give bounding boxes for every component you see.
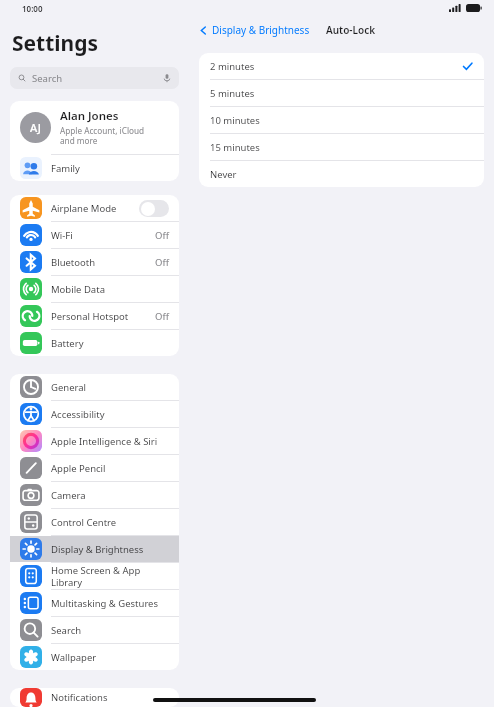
staticText: Alan Jones [60, 108, 119, 124]
button[interactable]: Apple Intelligence & Siri [10, 428, 179, 454]
staticText: Settings [12, 29, 99, 58]
staticText: Airplane Mode [51, 202, 139, 215]
staticText: 10:00 [22, 3, 43, 14]
staticText: Notifications [51, 691, 169, 704]
button[interactable]: Personal Hotspot [10, 303, 179, 329]
staticText: 15 minutes [210, 141, 473, 154]
staticText: Auto-Lock [326, 23, 376, 37]
staticText: Apple Account, iCloud and more [60, 125, 145, 147]
button[interactable]: Control Centre [10, 509, 179, 535]
staticText: AJ [30, 120, 41, 135]
button[interactable]: 10 minutes [199, 107, 484, 133]
button[interactable] [139, 200, 169, 217]
staticText: Family [51, 162, 80, 175]
staticText: Off [155, 229, 169, 242]
button[interactable]: Family [10, 155, 179, 181]
button[interactable]: Notifications [10, 688, 179, 707]
button[interactable]: Airplane Mode [10, 195, 179, 221]
button[interactable]: Search [10, 67, 179, 89]
staticText: Control Centre [51, 516, 169, 529]
button[interactable]: Multitasking & Gestures [10, 590, 179, 616]
button[interactable]: AJ [10, 101, 179, 154]
staticText: 5 minutes [210, 87, 473, 100]
staticText: 10 minutes [210, 114, 473, 127]
staticText: 2 minutes [210, 60, 462, 73]
button[interactable]: Bluetooth [10, 249, 179, 275]
button[interactable]: 2 minutes [199, 53, 484, 79]
button[interactable]: Mobile Data [10, 276, 179, 302]
staticText: Wi-Fi [51, 229, 155, 242]
staticText: Mobile Data [51, 283, 169, 296]
button[interactable]: Apple Pencil [10, 455, 179, 481]
staticText: Display & Brightness [212, 23, 310, 37]
staticText: Bluetooth [51, 256, 155, 269]
button[interactable]: Never [199, 161, 484, 187]
staticText: General [51, 381, 169, 394]
staticText: Camera [51, 489, 169, 502]
staticText: Search [51, 624, 169, 637]
staticText: Display & Brightness [51, 543, 169, 556]
button[interactable]: Home Screen & App Library [10, 563, 179, 589]
staticText: Apple Intelligence & Siri [51, 435, 169, 448]
button[interactable]: 5 minutes [199, 80, 484, 106]
button[interactable]: Wi-Fi [10, 222, 179, 248]
staticText: Off [155, 256, 169, 269]
button[interactable]: Battery [10, 330, 179, 356]
staticText: Wallpaper [51, 651, 169, 664]
button[interactable]: Accessibility [10, 401, 179, 427]
button[interactable]: Wallpaper [10, 644, 179, 670]
staticText: Personal Hotspot [51, 310, 155, 323]
staticText: Search [32, 72, 162, 85]
button[interactable]: General [10, 374, 179, 400]
button[interactable]: Display & Brightness [10, 536, 179, 562]
button[interactable]: 15 minutes [199, 134, 484, 160]
staticText: Apple Pencil [51, 462, 169, 475]
staticText: Off [155, 310, 169, 323]
button[interactable]: Search [10, 617, 179, 643]
staticText: Battery [51, 337, 169, 350]
staticText: Multitasking & Gestures [51, 597, 169, 610]
staticText: Accessibility [51, 408, 169, 421]
staticText: Never [210, 168, 473, 181]
button[interactable]: Display & Brightness [197, 20, 312, 40]
button[interactable]: Camera [10, 482, 179, 508]
staticText: Home Screen & App Library [51, 564, 169, 589]
